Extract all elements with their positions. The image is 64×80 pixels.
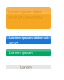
staticText: Lorem [20,64,32,70]
staticText: Lorem ipsum [9,50,33,55]
staticText: Lorem ipsum dolor sit amet [9,35,48,45]
staticText: Lorem ipsum dolor [8,9,42,14]
staticText: sit amet consectetur [8,14,43,20]
